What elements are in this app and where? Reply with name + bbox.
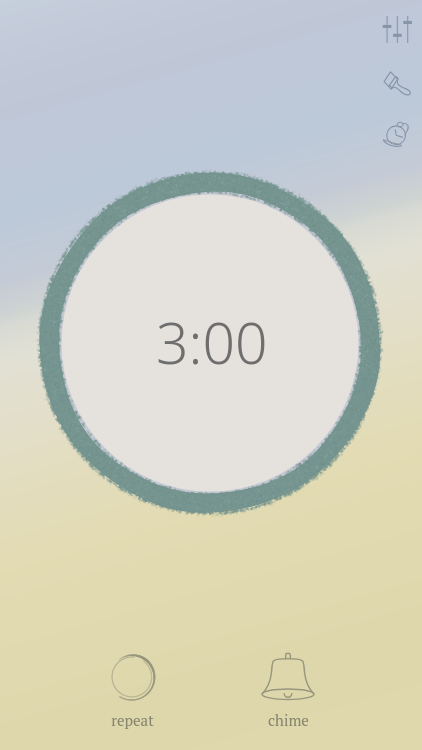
button[interactable]: Change theme bbox=[374, 59, 420, 105]
staticText: repeat bbox=[111, 710, 154, 730]
button[interactable]: 3:00 bbox=[39, 172, 381, 514]
staticText: 3:00 bbox=[156, 303, 268, 381]
button[interactable]: Adjust settings bbox=[374, 5, 420, 51]
button[interactable]: repeat bbox=[89, 650, 175, 744]
button[interactable]: chime bbox=[245, 650, 331, 744]
button[interactable]: Timer presets bbox=[374, 111, 420, 157]
staticText: chime bbox=[268, 710, 309, 730]
